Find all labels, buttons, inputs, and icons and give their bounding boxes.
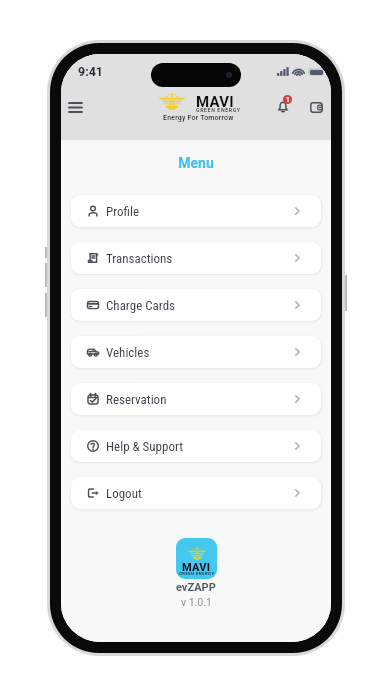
staticText: evZAPP — [176, 581, 216, 594]
button[interactable]: Profile — [71, 195, 321, 227]
staticText: Vehicles — [106, 345, 150, 360]
button[interactable]: Charge Cards — [71, 289, 321, 321]
staticText: GREEN ENERGY — [196, 107, 241, 113]
staticText: Reservation — [106, 392, 167, 407]
staticText: MAVI — [196, 93, 234, 111]
staticText: MAVI — [182, 561, 211, 574]
button[interactable]: Transactions — [71, 242, 321, 274]
button[interactable]: Wallet — [306, 98, 326, 116]
staticText: GREEN ENERGY — [179, 571, 215, 576]
staticText: Help & Support — [106, 439, 184, 454]
staticText: 1 — [286, 96, 290, 104]
staticText: v 1.0.1 — [181, 596, 212, 608]
button[interactable]: Logout — [71, 477, 321, 509]
staticText: Logout — [106, 486, 142, 501]
staticText: Transactions — [106, 251, 173, 266]
button[interactable]: Help & Support — [71, 430, 321, 462]
button[interactable]: Vehicles — [71, 336, 321, 368]
button[interactable]: evZAPP app icon — [176, 538, 217, 579]
staticText: Menu — [61, 155, 331, 171]
staticText: Charge Cards — [106, 298, 176, 313]
staticText: Energy For Tomorrow — [163, 114, 234, 122]
button[interactable]: Open navigation menu — [61, 93, 89, 121]
button[interactable]: Reservation — [71, 383, 321, 415]
staticText: Profile — [106, 204, 140, 219]
staticText: 9:41 — [78, 64, 104, 79]
button[interactable]: Notifications — [272, 91, 300, 117]
